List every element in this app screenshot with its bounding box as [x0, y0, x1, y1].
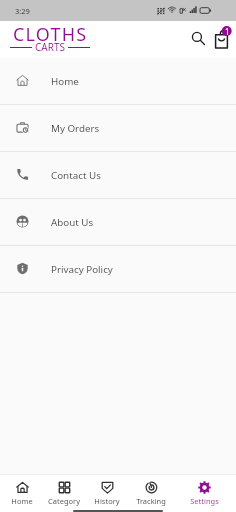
- button[interactable]: My Orders: [0, 105, 236, 151]
- staticText: 1: [225, 26, 230, 36]
- button[interactable]: Cart: [210, 22, 236, 48]
- staticText: About Us: [51, 216, 94, 229]
- staticText: History: [94, 496, 120, 506]
- staticText: Tracking: [136, 496, 166, 506]
- button[interactable]: History: [85, 474, 129, 512]
- staticText: CARTS: [35, 40, 65, 54]
- staticText: Privacy Policy: [51, 263, 113, 276]
- staticText: 3:29: [15, 6, 30, 16]
- button[interactable]: Contact Us: [0, 152, 236, 198]
- button[interactable]: Tracking: [129, 474, 173, 512]
- staticText: Category: [48, 496, 80, 506]
- button[interactable]: Privacy Policy: [0, 246, 236, 292]
- staticText: CLOTHS: [13, 22, 88, 47]
- staticText: Settings: [190, 496, 219, 506]
- button[interactable]: Home: [0, 58, 236, 104]
- button[interactable]: Search: [186, 26, 210, 50]
- button[interactable]: Home: [0, 474, 44, 512]
- staticText: Home: [11, 496, 33, 506]
- button[interactable]: About Us: [0, 199, 236, 245]
- button[interactable]: Category: [42, 474, 86, 512]
- button[interactable]: Settings: [182, 474, 226, 512]
- staticText: Contact Us: [51, 169, 101, 182]
- staticText: My Orders: [51, 122, 100, 135]
- staticText: Home: [51, 75, 79, 88]
